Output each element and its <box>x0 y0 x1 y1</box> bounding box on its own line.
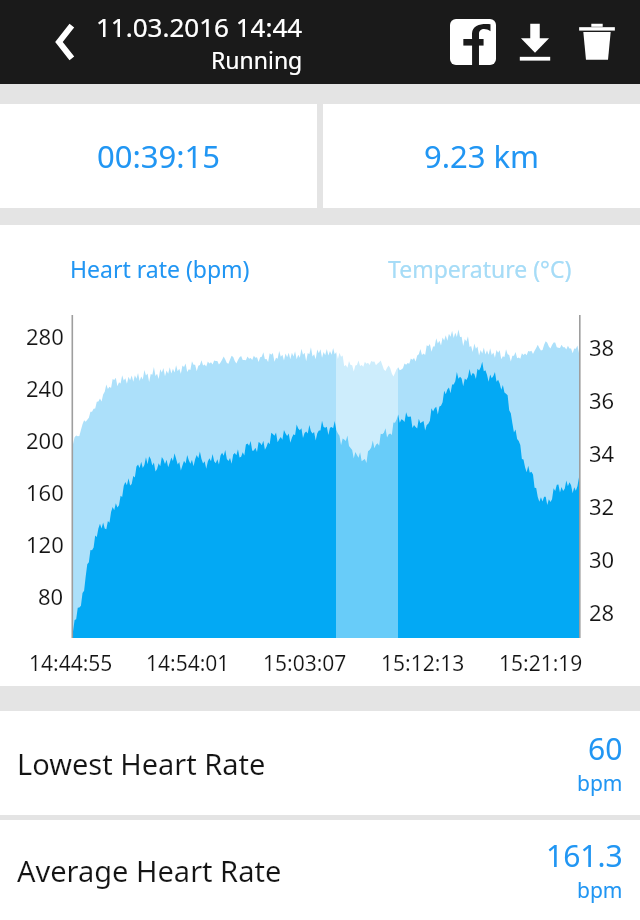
staticText: 14:54:01 <box>146 649 230 678</box>
button[interactable]: Delete <box>566 11 628 73</box>
staticText: bpm <box>577 769 623 798</box>
button[interactable]: Lowest Heart Rate <box>0 711 640 815</box>
staticText: 30 <box>589 544 615 574</box>
staticText: bpm <box>577 876 623 905</box>
staticText: 32 <box>589 491 615 521</box>
staticText: 28 <box>589 597 615 627</box>
staticText: 240 <box>26 373 64 403</box>
staticText: 36 <box>589 385 615 415</box>
button[interactable]: Download <box>504 11 566 73</box>
staticText: 15:03:07 <box>263 649 347 678</box>
staticText: 200 <box>26 425 64 455</box>
staticText: 60 <box>588 728 623 769</box>
staticText: 161.3 <box>546 835 623 876</box>
staticText: 15:12:13 <box>381 649 465 678</box>
staticText: 11.03.2016 14:44 <box>96 9 303 44</box>
staticText: 15:21:19 <box>499 649 583 678</box>
staticText: 9.23 km <box>424 135 540 177</box>
staticText: 160 <box>26 477 64 507</box>
staticText: 34 <box>589 438 615 468</box>
staticText: 38 <box>589 332 615 362</box>
button[interactable]: Share to Facebook <box>442 11 504 73</box>
staticText: Average Heart Rate <box>17 851 282 890</box>
button[interactable]: 9.23 km <box>323 104 640 208</box>
staticText: 80 <box>38 581 64 611</box>
staticText: 14:44:55 <box>29 649 113 678</box>
staticText: Heart rate (bpm) <box>70 253 250 284</box>
staticText: Temperature (°C) <box>388 253 572 284</box>
staticText: Running <box>211 44 303 75</box>
staticText: 120 <box>26 529 64 559</box>
staticText: 280 <box>26 321 64 351</box>
button[interactable]: 00:39:15 <box>0 104 317 208</box>
staticText: Lowest Heart Rate <box>17 744 266 783</box>
staticText: 00:39:15 <box>97 135 221 177</box>
button[interactable]: Back <box>36 14 92 70</box>
button[interactable]: Average Heart Rate <box>0 820 640 920</box>
